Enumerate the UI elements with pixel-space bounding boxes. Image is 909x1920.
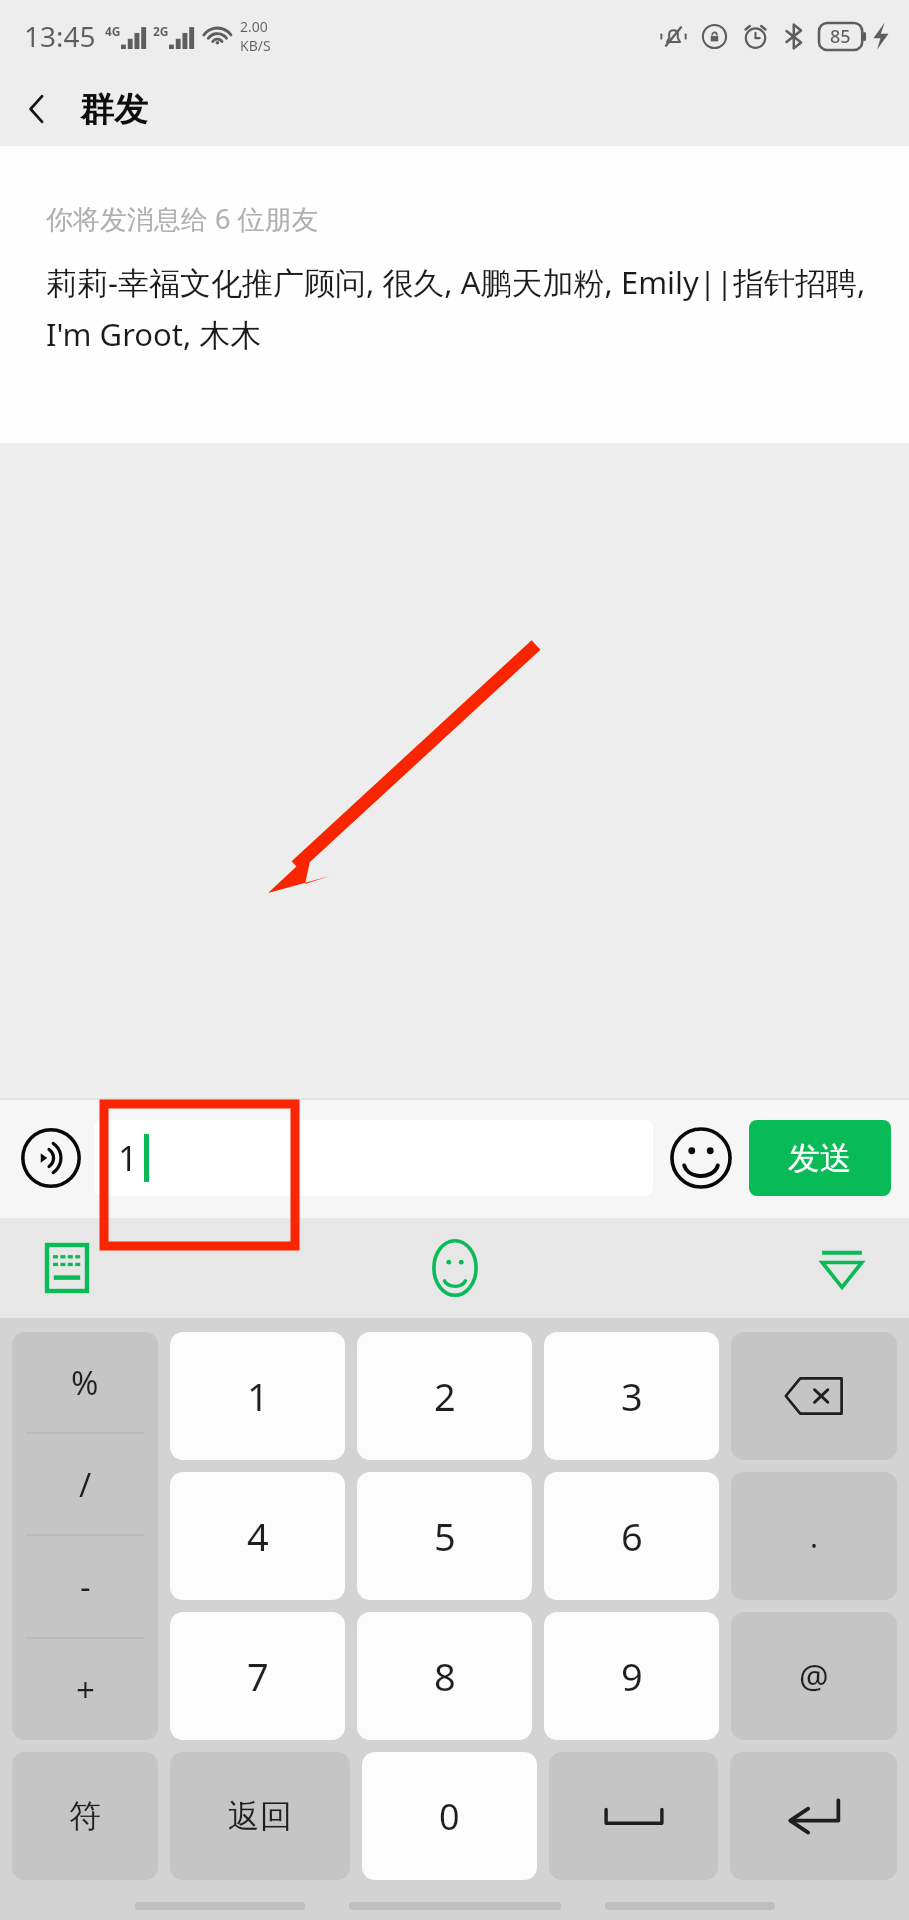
staticText: 2	[434, 1370, 456, 1422]
staticText: /	[79, 1462, 92, 1507]
button[interactable]: 5	[357, 1472, 532, 1600]
button[interactable]: 1	[170, 1332, 345, 1460]
staticText: 8	[434, 1650, 456, 1702]
other: Space	[603, 1801, 665, 1831]
staticText: .	[810, 1516, 819, 1557]
button[interactable]: 3	[544, 1332, 719, 1460]
button[interactable]: @	[731, 1612, 897, 1740]
staticText: 7	[247, 1650, 269, 1702]
button[interactable]: 2	[357, 1332, 532, 1460]
staticText: KB/S	[240, 36, 271, 55]
staticText: @	[799, 1654, 829, 1699]
button[interactable]: 返回	[170, 1752, 350, 1880]
staticText: 3	[621, 1370, 643, 1422]
staticText: 你将发消息给 6 位朋友	[46, 200, 319, 237]
button[interactable]: 符	[12, 1752, 158, 1880]
staticText: 返回	[228, 1796, 292, 1836]
staticText: 13:45	[24, 17, 96, 55]
button[interactable]: Hide keyboard	[801, 1227, 883, 1309]
other: Enter	[785, 1793, 843, 1839]
button[interactable]: %	[12, 1332, 158, 1432]
button[interactable]: Enter	[730, 1752, 897, 1880]
button[interactable]: -	[12, 1536, 158, 1637]
button[interactable]: 7	[170, 1612, 345, 1740]
staticText: 符	[69, 1796, 101, 1836]
button[interactable]: .	[731, 1472, 897, 1600]
button[interactable]: 9	[544, 1612, 719, 1740]
staticText: 5	[434, 1510, 456, 1562]
button[interactable]: 4	[170, 1472, 345, 1600]
button[interactable]: Space	[549, 1752, 718, 1880]
button[interactable]: 8	[357, 1612, 532, 1740]
button[interactable]: 6	[544, 1472, 719, 1600]
staticText: 0	[439, 1792, 460, 1841]
button[interactable]: 1	[94, 1120, 653, 1196]
staticText: -	[80, 1564, 91, 1609]
staticText: 85	[830, 24, 851, 49]
button[interactable]: 0	[362, 1752, 537, 1880]
staticText: 1	[118, 1135, 138, 1181]
staticText: 9	[621, 1650, 643, 1702]
other: Backspace	[784, 1374, 844, 1418]
staticText: 莉莉-幸福文化推广顾问, 很久, A鹏天加粉, Emily||指针招聘, I'm…	[46, 261, 871, 355]
button[interactable]: +	[12, 1639, 158, 1740]
button[interactable]: /	[12, 1434, 158, 1534]
button[interactable]: 发送	[749, 1120, 891, 1196]
button[interactable]: Keyboard layout	[26, 1227, 108, 1309]
button[interactable]: Emoji keyboard	[414, 1227, 496, 1309]
button[interactable]: Back	[0, 72, 74, 146]
staticText: 发送	[788, 1138, 852, 1178]
button[interactable]: Emoji	[653, 1110, 749, 1206]
staticText: 6	[621, 1510, 643, 1562]
staticText: 群发	[80, 88, 148, 131]
staticText: 4	[247, 1510, 269, 1562]
button[interactable]: Voice input	[8, 1115, 94, 1201]
staticText: 2.00	[240, 17, 268, 36]
staticText: +	[76, 1667, 95, 1712]
staticText: 2G	[153, 23, 169, 39]
staticText: %	[71, 1360, 99, 1405]
staticText: 4G	[105, 23, 121, 39]
staticText: 1	[247, 1370, 269, 1422]
button[interactable]: Backspace	[731, 1332, 897, 1460]
